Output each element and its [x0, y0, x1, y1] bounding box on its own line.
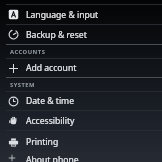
- staticText: Accessibility: [26, 115, 75, 127]
- staticText: Printing: [26, 136, 59, 148]
- button[interactable]: Date & time: [0, 92, 162, 110]
- staticText: Add account: [26, 62, 77, 74]
- button[interactable]: Printing: [0, 131, 162, 153]
- button[interactable]: Language & input: [0, 5, 162, 24]
- staticText: About phone: [26, 154, 79, 162]
- staticText: ACCOUNTS: [10, 48, 46, 56]
- staticText: Backup & reset: [26, 29, 87, 41]
- button[interactable]: Add account: [0, 59, 162, 77]
- button[interactable]: Accessibility: [0, 111, 162, 130]
- button[interactable]: About phone: [0, 154, 162, 162]
- staticText: Language & input: [26, 9, 99, 21]
- staticText: SYSTEM: [10, 81, 36, 89]
- staticText: Date & time: [26, 95, 75, 107]
- button[interactable]: Backup & reset: [0, 25, 162, 44]
